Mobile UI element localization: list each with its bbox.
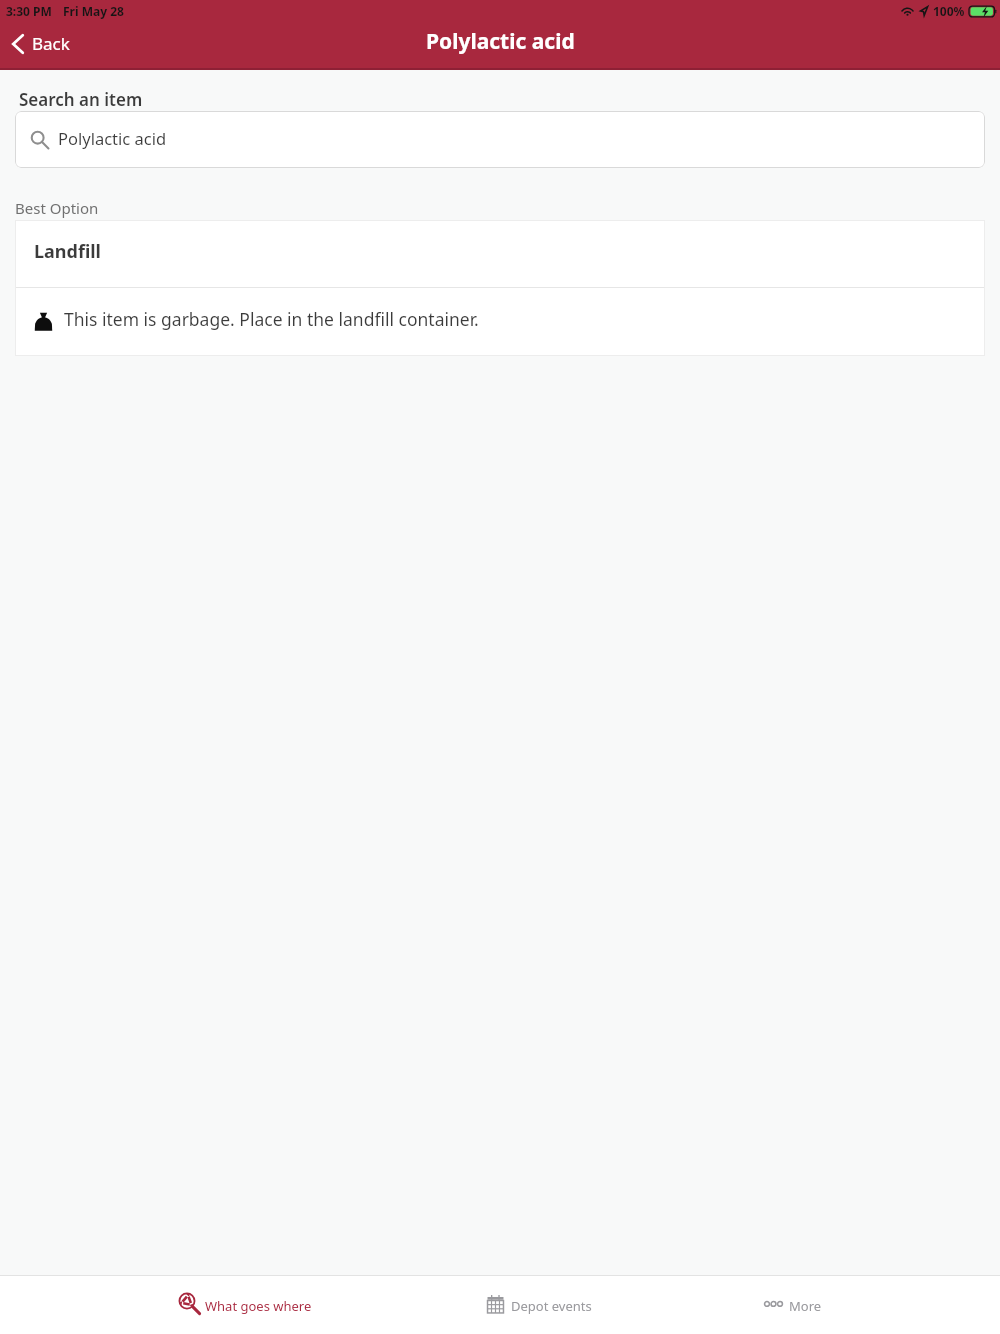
staticText: What goes where	[205, 1297, 312, 1315]
button[interactable]: What goes where	[0, 1276, 334, 1334]
staticText: 100%	[933, 3, 965, 19]
staticText: Polylactic acid	[426, 27, 575, 56]
staticText: 3:30 PM	[6, 3, 52, 19]
staticText: This item is garbage. Place in the landf…	[64, 307, 479, 331]
button[interactable]: Back	[3, 23, 78, 67]
staticText: Back	[32, 32, 70, 55]
staticText: Best Option	[15, 198, 99, 218]
staticText: More	[789, 1297, 822, 1315]
button[interactable]: Polylactic acid	[15, 111, 985, 168]
staticText: Depot events	[511, 1297, 592, 1315]
button[interactable]: Depot events	[334, 1276, 667, 1334]
staticText: Landfill	[34, 239, 101, 264]
staticText: Fri May 28	[63, 3, 124, 19]
staticText: Polylactic acid	[58, 127, 167, 149]
staticText: Search an item	[19, 88, 143, 111]
button[interactable]: More	[667, 1276, 1000, 1334]
